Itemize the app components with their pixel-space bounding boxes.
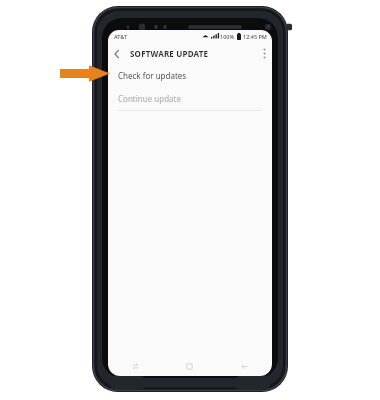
staticText: Continue update [118,93,181,104]
staticText: SOFTWARE UPDATE [130,48,209,59]
staticText: Check for updates [118,70,187,81]
button[interactable]: Back [108,43,126,64]
button[interactable]: Recents [108,356,162,376]
button[interactable]: Home [162,356,217,376]
staticText: 12:45 PM [243,33,267,40]
button: Continue update [108,87,272,110]
staticText: 100% [220,33,235,40]
button[interactable]: Check for updates [108,64,272,87]
button[interactable]: Back [217,356,272,376]
staticText: AT&T [114,33,128,40]
button[interactable]: More options [256,43,272,64]
